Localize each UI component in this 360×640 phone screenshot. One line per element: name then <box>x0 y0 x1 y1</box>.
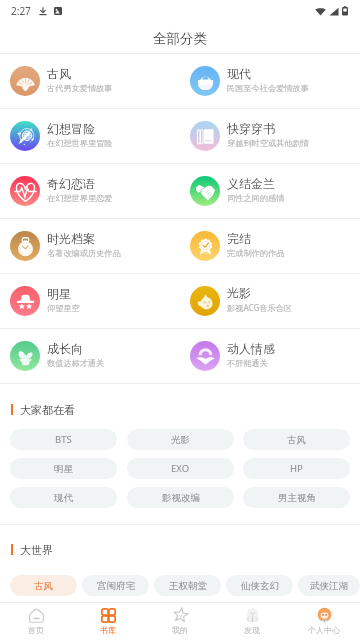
staticText: 穿越到时空或其他剧情 <box>227 138 309 148</box>
staticText: 名著改编或历史作品 <box>47 248 121 258</box>
staticText: 在幻想世界里冒险 <box>47 138 113 148</box>
button[interactable]: 王权朝堂 <box>154 575 221 596</box>
staticText: 古代男女爱情故事 <box>47 83 113 93</box>
staticText: 男主视角 <box>278 492 316 504</box>
button[interactable]: 奇幻恋语 <box>0 164 180 218</box>
staticText: 奇幻恋语 <box>47 176 95 191</box>
button[interactable]: 时光档案 <box>0 219 180 273</box>
button[interactable]: 首页 <box>0 603 72 640</box>
staticText: 快穿穿书 <box>227 121 275 136</box>
staticText: 全部分类 <box>153 30 207 47</box>
staticText: 现代 <box>54 492 73 504</box>
staticText: 同性之间的感情 <box>227 193 285 203</box>
button[interactable]: 幻想冒险 <box>0 109 180 163</box>
button[interactable]: 男主视角 <box>243 487 350 508</box>
button[interactable]: 明星 <box>10 458 117 479</box>
staticText: 大家都在看 <box>20 403 75 415</box>
button[interactable]: 快穿穿书 <box>180 109 360 163</box>
staticText: 影视改编 <box>162 492 200 504</box>
staticText: 首页 <box>28 625 44 635</box>
staticText: 成长向 <box>47 341 83 356</box>
staticText: 个人中心 <box>308 625 340 635</box>
staticText: 仙侠玄幻 <box>241 580 279 592</box>
staticText: 民国至今社会爱情故事 <box>227 83 309 93</box>
staticText: 古风 <box>34 580 53 592</box>
staticText: 动人情感 <box>227 341 275 356</box>
staticText: BTS <box>55 433 72 446</box>
staticText: EXO <box>171 462 190 475</box>
staticText: 光影 <box>171 434 190 446</box>
staticText: 影视ACG音乐合区 <box>227 302 293 313</box>
staticText: 武侠江湖 <box>310 580 348 592</box>
button[interactable]: 成长向 <box>0 329 180 383</box>
button[interactable]: 个人中心 <box>288 603 360 640</box>
button[interactable]: 古风 <box>10 575 77 596</box>
staticText: HP <box>290 462 303 475</box>
staticText: 古风 <box>287 434 306 446</box>
button[interactable]: 光影 <box>180 274 360 328</box>
staticText: 在幻想世界里恋爱 <box>47 193 113 203</box>
staticText: 光影 <box>227 285 251 300</box>
staticText: 完成制作的作品 <box>227 248 285 258</box>
staticText: 数值达标才通关 <box>47 358 105 368</box>
button[interactable]: 动人情感 <box>180 329 360 383</box>
staticText: 仰望星空 <box>47 303 80 313</box>
button[interactable]: 光影 <box>127 429 234 450</box>
button[interactable]: 武侠江湖 <box>298 575 360 596</box>
button[interactable]: 书库 <box>72 603 144 640</box>
button[interactable]: 宫闱府宅 <box>82 575 149 596</box>
button[interactable]: 我的 <box>144 603 216 640</box>
button[interactable]: BTS <box>10 429 117 450</box>
staticText: 古风 <box>47 66 71 81</box>
button[interactable]: 古风 <box>243 429 350 450</box>
button[interactable]: 义结金兰 <box>180 164 360 218</box>
staticText: 现代 <box>227 66 251 81</box>
staticText: 发现 <box>244 625 260 635</box>
staticText: 不肝能通关 <box>227 358 268 368</box>
button[interactable]: EXO <box>127 458 234 479</box>
staticText: 时光档案 <box>47 231 95 246</box>
staticText: 完结 <box>227 231 251 246</box>
staticText: 王权朝堂 <box>169 580 207 592</box>
staticText: 幻想冒险 <box>47 121 95 136</box>
button[interactable]: 现代 <box>180 54 360 108</box>
button[interactable]: 明星 <box>0 274 180 328</box>
button[interactable]: 古风 <box>0 54 180 108</box>
staticText: 义结金兰 <box>227 176 275 191</box>
staticText: 明星 <box>47 286 71 301</box>
staticText: 我的 <box>172 625 188 635</box>
button[interactable]: 影视改编 <box>127 487 234 508</box>
staticText: 书库 <box>100 625 116 635</box>
staticText: 2:27 <box>11 4 31 18</box>
staticText: 宫闱府宅 <box>97 580 135 592</box>
button[interactable]: 现代 <box>10 487 117 508</box>
button[interactable]: 发现 <box>216 603 288 640</box>
button[interactable]: 完结 <box>180 219 360 273</box>
staticText: 明星 <box>54 463 73 475</box>
button[interactable]: 仙侠玄幻 <box>226 575 293 596</box>
staticText: 大世界 <box>20 543 53 555</box>
button[interactable]: HP <box>243 458 350 479</box>
